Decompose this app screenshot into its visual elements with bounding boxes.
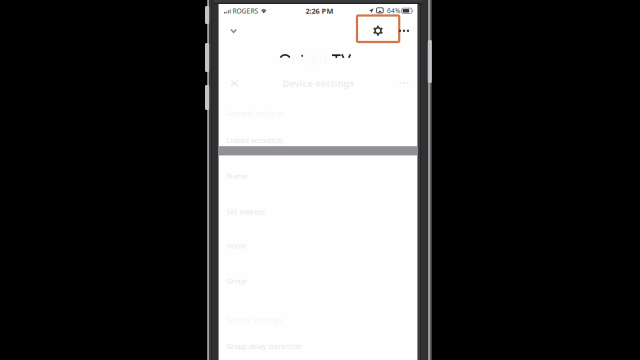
button[interactable]: Linked account(s): [218, 123, 417, 157]
staticText: 2:26 PM: [306, 6, 334, 16]
button[interactable]: Set address: [218, 195, 417, 229]
staticText: Group: [226, 276, 246, 286]
button[interactable]: Close: [222, 72, 248, 94]
button[interactable]: Group delay correction: [218, 329, 417, 360]
staticText: Linked account(s): [226, 135, 282, 145]
staticText: 64%: [387, 6, 400, 15]
staticText: General settings: [226, 108, 285, 118]
staticText: Name: [226, 171, 247, 181]
staticText: ROGERS: [232, 6, 258, 15]
staticText: Onkyo TV: [279, 48, 351, 68]
staticText: Set address: [226, 207, 264, 217]
staticText: Device settings: [282, 77, 354, 89]
button[interactable]: Home: [218, 229, 417, 263]
button[interactable]: More options: [393, 20, 415, 42]
button[interactable]: Group: [218, 264, 417, 298]
staticText: Home: [226, 241, 246, 251]
button[interactable]: Collapse: [221, 19, 247, 43]
button[interactable]: Name: [218, 159, 417, 193]
button[interactable]: Settings: [363, 20, 393, 42]
staticText: Group delay correction: [226, 341, 301, 351]
